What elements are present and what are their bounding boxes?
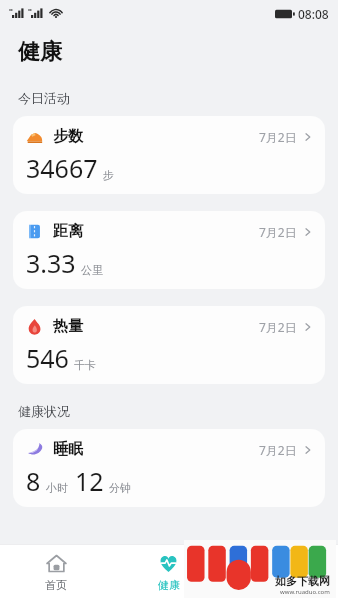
staticText: 发现 <box>271 578 293 592</box>
button[interactable]: 睡眠 <box>13 429 325 507</box>
button[interactable]: 健康 <box>112 545 225 600</box>
staticText: 3.33 <box>26 246 76 280</box>
staticText: 546 <box>26 341 69 375</box>
staticText: 7月2日 <box>259 129 297 145</box>
staticText: 今日活动 <box>18 90 70 106</box>
button[interactable]: 首页 <box>0 545 112 600</box>
other: 首页 <box>46 553 67 574</box>
button[interactable]: 步数 <box>13 116 325 194</box>
staticText: 健康状况 <box>18 403 70 419</box>
button[interactable]: 热量 <box>13 306 325 384</box>
staticText: 千卡 <box>74 358 96 372</box>
staticText: 08:08 <box>298 6 329 22</box>
staticText: 步 <box>103 168 114 182</box>
staticText: 步数 <box>53 127 83 146</box>
staticText: 7月2日 <box>259 319 297 335</box>
staticText: 7月2日 <box>259 224 297 240</box>
staticText: 距离 <box>53 222 83 241</box>
staticText: 公里 <box>81 263 103 277</box>
staticText: 34667 <box>26 151 98 185</box>
staticText: 小时 <box>46 481 68 495</box>
staticText: 睡眠 <box>53 440 83 459</box>
other: 健康 <box>158 553 179 574</box>
button[interactable]: 发现 <box>225 545 338 600</box>
staticText: 如多下载网 <box>275 574 330 588</box>
staticText: 健康 <box>158 578 180 592</box>
staticText: www.ruaduo.com <box>280 588 330 596</box>
staticText: 7月2日 <box>259 442 297 458</box>
staticText: 首页 <box>45 578 67 592</box>
staticText: 12 <box>75 464 104 498</box>
staticText: 分钟 <box>109 481 131 495</box>
staticText: 8 <box>26 464 41 498</box>
staticText: 健康 <box>18 38 62 66</box>
other: 发现 <box>271 553 292 574</box>
button[interactable]: 距离 <box>13 211 325 289</box>
staticText: 热量 <box>53 317 83 336</box>
